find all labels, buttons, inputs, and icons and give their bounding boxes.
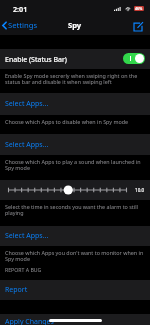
- staticText: Choose which Apps to disable when in Spy…: [5, 118, 146, 125]
- staticText: 10.0: [135, 187, 145, 193]
- button[interactable]: Report: [0, 280, 150, 300]
- staticText: Select the time in seconds you want the …: [5, 203, 146, 217]
- staticText: Select Apps...: [5, 99, 49, 109]
- button[interactable]: Select Apps...: [0, 93, 150, 115]
- staticText: Enable Spy mode secrerly when swiping ri…: [5, 72, 146, 86]
- button[interactable]: Enable Spy mode: [123, 53, 145, 64]
- button[interactable]: Select Apps...: [0, 134, 150, 155]
- staticText: Apply Changes: [5, 317, 54, 325]
- staticText: Choose which Apps to play a sound when l…: [5, 158, 146, 172]
- staticText: REPORT A BUG: [5, 266, 42, 273]
- button[interactable]: Alarm duration: [8, 183, 127, 197]
- staticText: Report: [5, 285, 28, 295]
- staticText: Choose which Apps you don't want to moni…: [5, 249, 146, 263]
- staticText: Spy: [68, 20, 82, 30]
- staticText: Enable (Status Bar): [5, 55, 67, 65]
- button[interactable]: Settings: [0, 17, 43, 33]
- staticText: Settings: [8, 20, 38, 30]
- staticText: Select Apps...: [5, 140, 49, 150]
- staticText: Select Apps...: [5, 231, 49, 241]
- staticText: 46%: [135, 6, 143, 11]
- button[interactable]: Enable (Status Bar): [0, 49, 150, 69]
- staticText: 2:01: [13, 4, 28, 14]
- button[interactable]: Apply Changes: [0, 314, 150, 325]
- button[interactable]: Compose: [128, 17, 150, 34]
- button[interactable]: Select Apps...: [0, 226, 150, 246]
